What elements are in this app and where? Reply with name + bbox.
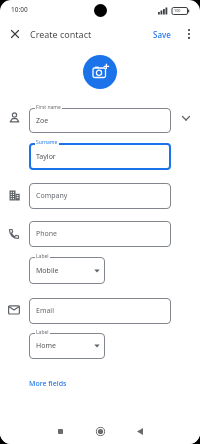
button[interactable] [91,423,109,440]
button[interactable] [83,55,117,89]
staticText: Save [153,29,171,40]
staticText: 10:00 [11,5,28,14]
button[interactable]: More fields [29,377,79,391]
button[interactable] [178,110,194,126]
button[interactable]: Home [29,333,105,359]
staticText: Label [36,253,49,260]
button[interactable]: Company [29,183,171,209]
button[interactable] [6,25,23,42]
staticText: Company [36,191,68,201]
button[interactable]: Email [29,298,171,324]
staticText: First name [36,104,61,111]
staticText: Home [36,341,56,351]
button[interactable] [131,423,148,440]
staticText: Create contact [30,28,92,40]
staticText: Mobile [36,266,59,276]
staticText: 100 [174,8,181,13]
button[interactable] [52,423,69,440]
staticText: Taylor [36,152,56,162]
button[interactable]: Phone [29,221,171,247]
staticText: Zoe [36,116,49,126]
staticText: Surname [36,139,58,146]
staticText: Phone [36,229,58,239]
button[interactable]: Save [148,25,176,43]
button[interactable]: Zoe [29,108,171,133]
staticText: Label [36,329,49,336]
staticText: Email [36,306,54,316]
button[interactable] [182,25,196,43]
button[interactable]: Taylor [29,143,171,170]
staticText: More fields [29,379,67,389]
button[interactable]: Mobile [29,257,105,284]
